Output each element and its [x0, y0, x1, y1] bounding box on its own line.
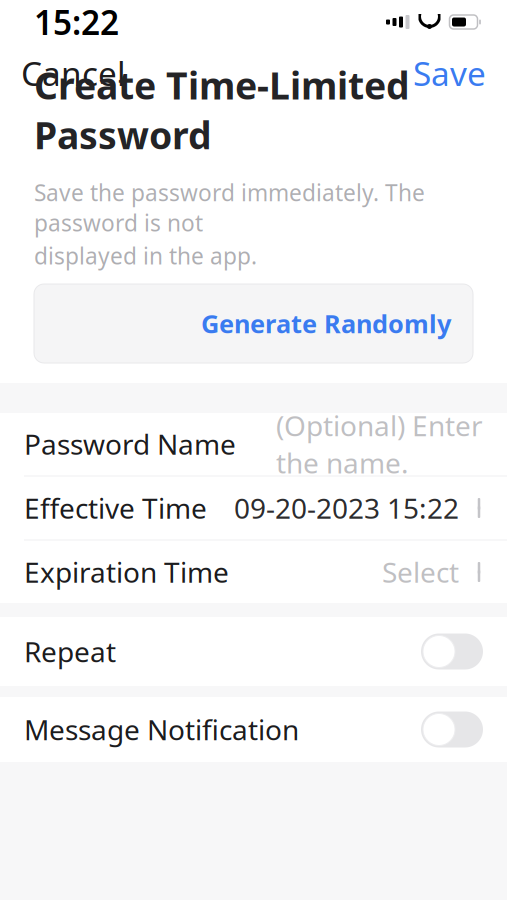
staticText: (Optional) Enter the name. — [276, 407, 483, 481]
button[interactable]: Generate Randomly — [34, 284, 473, 363]
button[interactable]: Cancel — [3, 43, 144, 103]
button[interactable]: Expiration Time — [0, 540, 507, 603]
staticText: Effective Time — [24, 489, 207, 527]
staticText: 09-20-2023 15:22 — [234, 489, 459, 527]
staticText: Save the password immediately. The passw… — [34, 177, 425, 238]
staticText: Expiration Time — [24, 553, 229, 591]
button[interactable]: Message Notification — [0, 697, 507, 762]
button[interactable]: Save — [395, 43, 504, 103]
staticText: Create Time-Limited Password — [34, 60, 410, 159]
staticText: Generate Randomly — [201, 307, 451, 340]
staticText: Password Name — [24, 425, 236, 463]
button[interactable]: Password Name — [0, 412, 507, 475]
staticText: Repeat — [24, 633, 116, 670]
staticText: Message Notification — [24, 711, 299, 748]
staticText: Select — [382, 553, 459, 591]
button[interactable]: Effective Time — [0, 476, 507, 539]
staticText: 15:22 — [34, 0, 119, 44]
staticText: Save — [413, 51, 486, 95]
staticText: Cancel — [21, 51, 126, 95]
staticText: 7-Digit Password — [34, 303, 224, 335]
staticText: displayed in the app. — [34, 241, 257, 271]
button[interactable]: Repeat — [0, 617, 507, 686]
